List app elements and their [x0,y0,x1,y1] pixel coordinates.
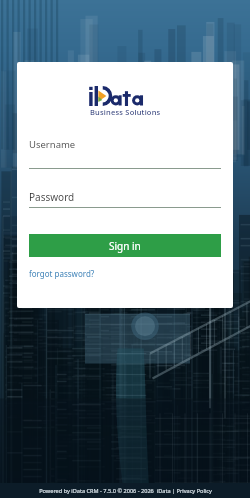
button[interactable]: Password [17,190,233,208]
staticText: Sign in [109,239,141,253]
staticText: Password [29,190,75,204]
button[interactable]: Username [17,138,233,169]
staticText: Username [29,138,76,151]
button[interactable]: Sign in [29,234,221,257]
staticText: Powered by iData CRM - 7.5.0 © 2006 - 20… [39,487,212,495]
button[interactable]: forgot password? [29,268,95,279]
staticText: forgot password? [29,268,95,279]
staticText: Business Solutions [90,107,161,117]
